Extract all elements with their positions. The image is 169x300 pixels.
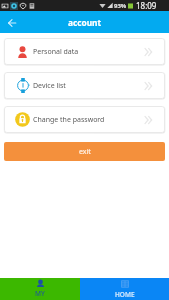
staticText: Device list	[33, 81, 66, 91]
button[interactable]: Back	[2, 13, 21, 32]
staticText: MY	[35, 289, 45, 298]
button[interactable]: MY	[0, 278, 80, 300]
button[interactable]: HOME	[80, 278, 169, 300]
button[interactable]: Personal data	[4, 38, 165, 65]
staticText: exit	[79, 147, 91, 157]
staticText: 93%	[114, 2, 127, 10]
staticText: account	[68, 17, 102, 28]
staticText: Change the password	[33, 115, 105, 125]
staticText: 18:09	[136, 0, 157, 11]
button[interactable]: Device list	[4, 72, 165, 99]
button[interactable]: exit	[4, 142, 165, 161]
button[interactable]: Change the password	[4, 106, 165, 133]
staticText: Personal data	[33, 47, 79, 57]
staticText: HOME	[115, 290, 135, 299]
